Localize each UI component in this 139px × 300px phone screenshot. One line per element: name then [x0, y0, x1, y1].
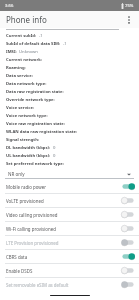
button[interactable]: Data network type:: [0, 80, 139, 88]
staticText: CBRS data: [6, 254, 121, 260]
button[interactable]: Set preferred network type:: [0, 160, 139, 168]
button[interactable]: VoLTE provisioned: [0, 194, 139, 207]
button[interactable]: Video calling provisioned: [0, 208, 139, 221]
staticText: 3:56: [5, 3, 14, 9]
staticText: Override network type:: [6, 97, 55, 103]
staticText: Unknown: [19, 49, 38, 55]
staticText: 0: [53, 145, 56, 151]
staticText: Voice network type:: [6, 113, 48, 119]
button[interactable]: Roaming:: [0, 64, 139, 72]
staticText: Signal strength:: [6, 137, 40, 143]
button[interactable]: CBRS data: [0, 250, 139, 263]
button[interactable]: Voice service:: [0, 104, 139, 112]
staticText: Set removable eSIM as default: [6, 282, 121, 288]
staticText: Current subId:: [6, 33, 37, 39]
staticText: Current network:: [6, 57, 43, 63]
staticText: Set preferred network type:: [6, 161, 64, 167]
button[interactable]: Signal strength:: [0, 136, 139, 144]
staticText: SubId of default data SIM:: [6, 41, 61, 47]
staticText: Roaming:: [6, 65, 26, 71]
staticText: WLAN data raw registration state:: [6, 129, 78, 135]
staticText: Video calling provisioned: [6, 212, 121, 218]
button[interactable]: Set removable eSIM as default: [0, 278, 139, 291]
button[interactable]: Voice raw registration state:: [0, 120, 139, 128]
staticText: Enable DSDS: [6, 268, 121, 274]
staticText: LTE Provision provisioned: [6, 240, 121, 246]
staticText: Mobile radio power: [6, 184, 121, 190]
button[interactable]: NR only: [5, 169, 134, 179]
staticText: VoLTE provisioned: [6, 198, 121, 204]
staticText: Data service:: [6, 73, 33, 79]
button[interactable]: Data service:: [0, 72, 139, 80]
button[interactable]: SubId of default data SIM:: [0, 40, 139, 48]
button[interactable]: Enable DSDS: [0, 264, 139, 277]
button[interactable]: DL bandwidth (kbps):: [0, 144, 139, 152]
button[interactable]: Data raw registration state:: [0, 88, 139, 96]
button[interactable]: Mobile radio power: [0, 180, 139, 193]
staticText: -1: [39, 33, 43, 39]
staticText: IMSI:: [6, 49, 17, 55]
button[interactable]: Voice network type:: [0, 112, 139, 120]
button[interactable]: WLAN data raw registration state:: [0, 128, 139, 136]
staticText: Data network type:: [6, 81, 47, 87]
button[interactable]: IMSI:: [0, 48, 139, 56]
button[interactable]: Override network type:: [0, 96, 139, 104]
staticText: UL bandwidth (kbps):: [6, 153, 51, 159]
staticText: -1: [63, 41, 67, 47]
staticText: NR only: [8, 171, 25, 177]
staticText: Phone info: [6, 14, 47, 25]
button[interactable]: Current network:: [0, 56, 139, 64]
button[interactable]: Wi-Fi calling provisioned: [0, 222, 139, 235]
button[interactable]: LTE Provision provisioned: [0, 236, 139, 249]
staticText: 0: [53, 153, 56, 159]
staticText: DL bandwidth (kbps):: [6, 145, 51, 151]
staticText: Data raw registration state:: [6, 89, 64, 95]
staticText: Wi-Fi calling provisioned: [6, 226, 121, 232]
staticText: Voice service:: [6, 105, 35, 111]
button[interactable]: UL bandwidth (kbps):: [0, 152, 139, 160]
button[interactable]: Current subId:: [0, 32, 139, 40]
staticText: Voice raw registration state:: [6, 121, 66, 127]
button[interactable]: More options: [122, 13, 136, 27]
staticText: 75%: [125, 3, 134, 9]
